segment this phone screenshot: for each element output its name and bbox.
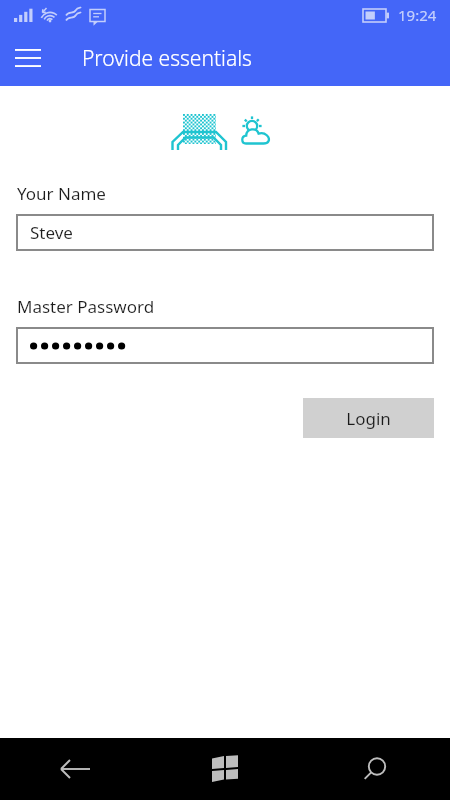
button[interactable]: Steve [16, 214, 434, 251]
staticText: Login [346, 407, 391, 430]
button[interactable]: Back [0, 738, 150, 800]
button[interactable]: Home [150, 738, 300, 800]
button[interactable]: Search [300, 738, 450, 800]
staticText: Steve [30, 221, 73, 244]
button[interactable]: Open navigation menu [0, 30, 56, 86]
button[interactable] [16, 327, 434, 364]
staticText: Your Name [17, 182, 106, 205]
button[interactable]: Login [303, 398, 434, 438]
staticText: Master Password [17, 295, 155, 318]
staticText: 19:24 [398, 5, 437, 25]
staticText: Provide essentials [82, 44, 252, 73]
